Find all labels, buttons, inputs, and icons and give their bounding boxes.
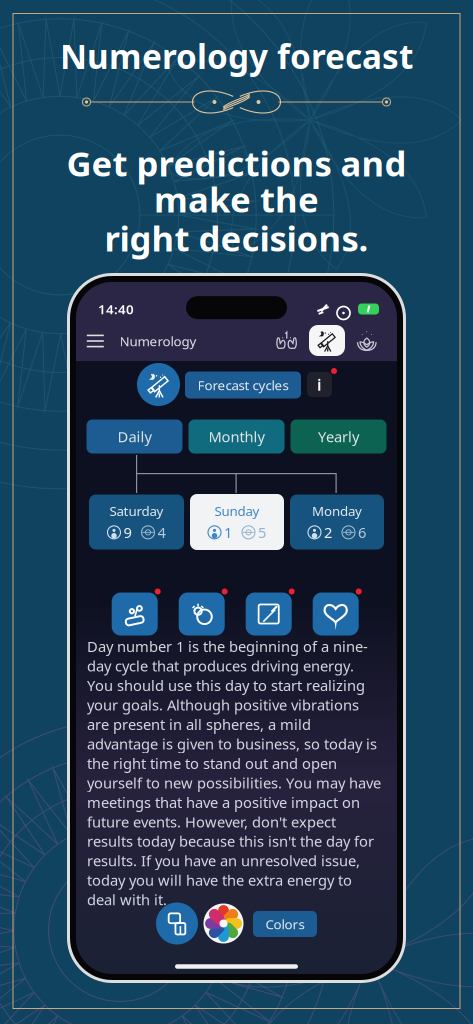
- staticText: i: [317, 374, 322, 395]
- staticText: 1: [224, 523, 232, 542]
- button[interactable]: Nature: [112, 588, 161, 635]
- staticText: make the: [154, 176, 319, 222]
- button[interactable]: Sunday: [190, 494, 284, 550]
- staticText: Day number 1 is the beginning of a nine-…: [87, 637, 381, 909]
- button[interactable]: Forecast: [137, 363, 180, 406]
- staticText: 2: [324, 523, 332, 542]
- staticText: Monday: [312, 502, 362, 520]
- staticText: Colors: [265, 915, 304, 933]
- button[interactable]: Forecast cycles: [185, 371, 301, 398]
- staticText: Numerology: [119, 332, 196, 350]
- button[interactable]: Clothing: [156, 902, 198, 944]
- button[interactable]: Ideas: [179, 588, 228, 635]
- button[interactable]: Yearly: [290, 419, 386, 453]
- button[interactable]: Monday: [290, 494, 384, 549]
- button[interactable]: Monthly: [188, 419, 284, 453]
- staticText: Numerology forecast: [60, 34, 413, 78]
- button[interactable]: Daily: [86, 419, 182, 453]
- button[interactable]: Saturday: [89, 494, 184, 549]
- staticText: Sunday: [214, 502, 259, 520]
- button[interactable]: Colour wheel: [203, 903, 243, 943]
- button[interactable]: Menu: [81, 327, 109, 355]
- staticText: Daily: [117, 427, 151, 446]
- button[interactable]: Love: [313, 588, 362, 635]
- staticText: Monthly: [208, 427, 264, 446]
- staticText: 9: [123, 523, 131, 542]
- button[interactable]: Astrology: [309, 325, 345, 356]
- staticText: Yearly: [318, 427, 359, 446]
- button[interactable]: Meditation: [352, 326, 381, 355]
- staticText: Saturday: [109, 502, 163, 520]
- staticText: 4: [157, 523, 165, 542]
- staticText: 6: [358, 523, 366, 542]
- staticText: Get predictions and: [66, 140, 406, 186]
- staticText: 14:40: [98, 300, 134, 318]
- button[interactable]: Palmistry: [272, 326, 301, 355]
- staticText: right decisions.: [104, 215, 368, 261]
- button[interactable]: Info: [307, 372, 332, 397]
- button[interactable]: Work: [246, 588, 295, 635]
- staticText: Forecast cycles: [197, 376, 288, 394]
- button[interactable]: Colors: [253, 911, 317, 937]
- staticText: 5: [258, 523, 266, 542]
